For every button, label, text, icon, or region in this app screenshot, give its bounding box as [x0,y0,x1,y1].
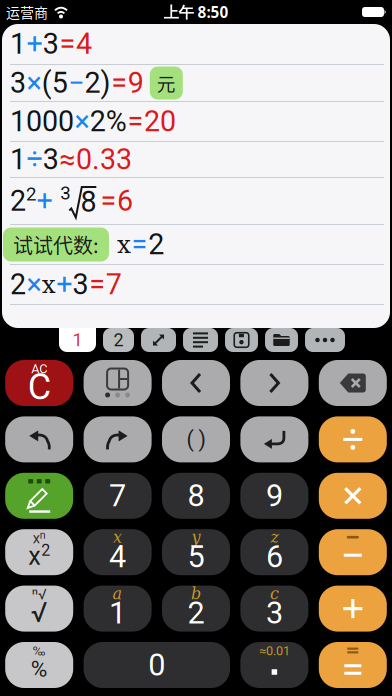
staticText: 1 [72,329,82,351]
button[interactable]: AC [5,360,73,406]
staticText: x [33,530,40,547]
button[interactable]: ‰ [5,642,73,688]
button[interactable]: 试试代数: [3,227,109,261]
button[interactable] [265,328,298,352]
button[interactable]: 元 [150,66,183,99]
staticText: × [74,105,89,138]
staticText: ⁿ√ [32,586,47,603]
staticText: 2 [187,595,204,631]
staticText: ÷ [26,143,42,176]
staticText: = [59,27,75,61]
staticText: ( ) [186,427,205,452]
button[interactable]: b [162,586,230,632]
staticText: x [28,541,41,571]
staticText: 9 [266,478,283,514]
staticText: × [26,66,41,100]
button[interactable] [240,416,308,462]
staticText: = [100,184,116,218]
button[interactable]: 1 [59,328,96,352]
button[interactable] [319,473,387,519]
button[interactable]: 0 [84,642,230,688]
staticText: 0 [148,647,165,683]
button[interactable]: 9 [240,473,308,519]
button[interactable] [305,328,345,352]
staticText: 3 [266,595,283,631]
button[interactable] [319,360,387,406]
staticText: ‰ [33,643,46,659]
staticText: 运营商 [6,2,48,22]
button[interactable]: 8 [162,473,230,519]
button[interactable] [319,642,387,688]
button[interactable]: c [240,586,308,632]
button[interactable] [240,360,308,406]
staticText: n [40,529,46,541]
staticText: = [132,228,148,261]
staticText: AC [31,362,47,376]
staticText: 元 [157,69,176,96]
staticText: √ [31,596,48,629]
staticText: 20 [144,105,176,138]
button[interactable] [5,416,73,462]
staticText: 9 [128,66,144,100]
staticText: x [42,270,56,299]
staticText: 6 [266,539,283,575]
button[interactable] [162,360,230,406]
staticText: 1 [10,143,26,176]
button[interactable] [319,586,387,632]
button[interactable]: x [84,529,152,575]
button[interactable]: ⁿ√ [5,586,73,632]
staticText: b [191,584,201,603]
button[interactable] [5,473,73,519]
button[interactable]: z [240,529,308,575]
button[interactable] [183,328,218,352]
button[interactable]: a [84,586,152,632]
staticText: C [28,366,51,408]
staticText: − [68,66,84,100]
staticText: 5 [187,539,204,575]
button[interactable] [84,360,152,406]
staticText: 2 [113,329,123,351]
button[interactable] [141,328,176,352]
staticText: 3 [43,143,59,176]
staticText: 1 [10,27,26,61]
staticText: 2 [148,228,164,261]
staticText: 2) [85,66,111,100]
staticText: ≈0.01 [259,644,290,658]
staticText: × [26,268,41,301]
button[interactable] [319,416,387,462]
staticText: 2 [26,183,36,205]
button[interactable]: y [162,529,230,575]
staticText: 2 [41,541,50,560]
button[interactable] [225,328,258,352]
staticText: 3 [10,66,26,100]
staticText: 上午 8:50 [163,2,228,22]
button[interactable]: 7 [84,473,152,519]
button[interactable]: x [5,529,73,575]
staticText: z [270,528,278,546]
staticText: = [111,66,127,100]
staticText: + [36,184,52,218]
staticText: 8 [80,185,96,219]
staticText: x [113,528,122,546]
staticText: 7 [109,478,126,514]
button[interactable]: ( ) [162,416,230,462]
staticText: 3 [43,27,59,61]
staticText: 4 [76,27,92,61]
button[interactable]: 2 [103,328,134,352]
staticText: = [127,105,143,138]
staticText: + [26,27,42,61]
button[interactable] [84,416,152,462]
staticText: 7 [106,268,122,301]
staticText: x [117,230,131,259]
staticText: 3 [73,268,89,301]
staticText: c [270,584,279,603]
staticText: % [31,656,48,682]
staticText: 试试代数: [13,230,99,259]
staticText: 3 [60,182,70,204]
staticText: 2 [10,184,26,218]
staticText: ≈ [59,143,75,176]
button[interactable]: ≈0.01 [240,642,308,688]
button[interactable] [319,529,387,575]
staticText: + [56,268,72,301]
staticText: 2 [10,268,26,301]
